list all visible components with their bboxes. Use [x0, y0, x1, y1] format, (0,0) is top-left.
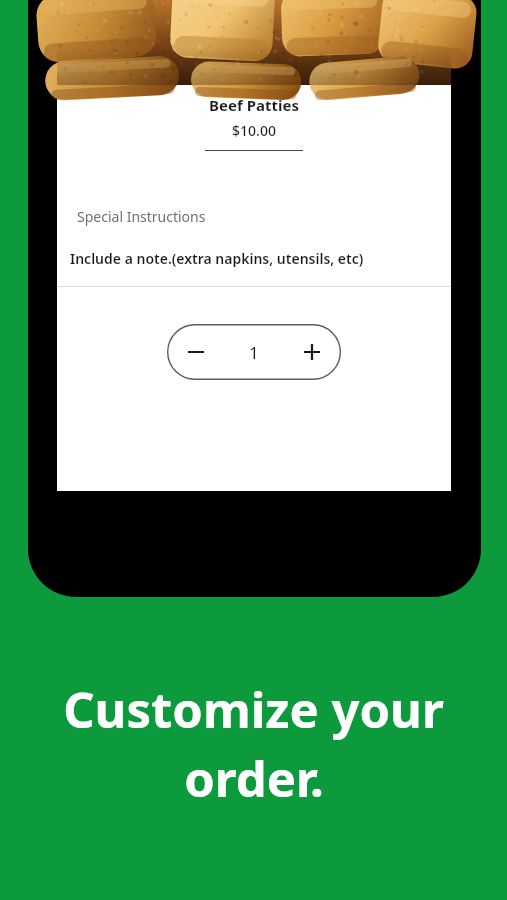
- staticText: $10.00: [57, 121, 451, 140]
- staticText: order.: [184, 745, 324, 812]
- staticText: Include a note.(extra napkins, utensils,…: [70, 249, 364, 268]
- button[interactable]: Increase quantity: [283, 324, 341, 380]
- staticText: 1: [249, 341, 259, 364]
- button[interactable]: Decrease quantity: [167, 324, 225, 380]
- button[interactable]: Decrease quantity: [167, 324, 341, 380]
- staticText: Beef Patties: [57, 95, 451, 115]
- staticText: Customize your: [63, 676, 444, 743]
- staticText: Special Instructions: [77, 207, 206, 226]
